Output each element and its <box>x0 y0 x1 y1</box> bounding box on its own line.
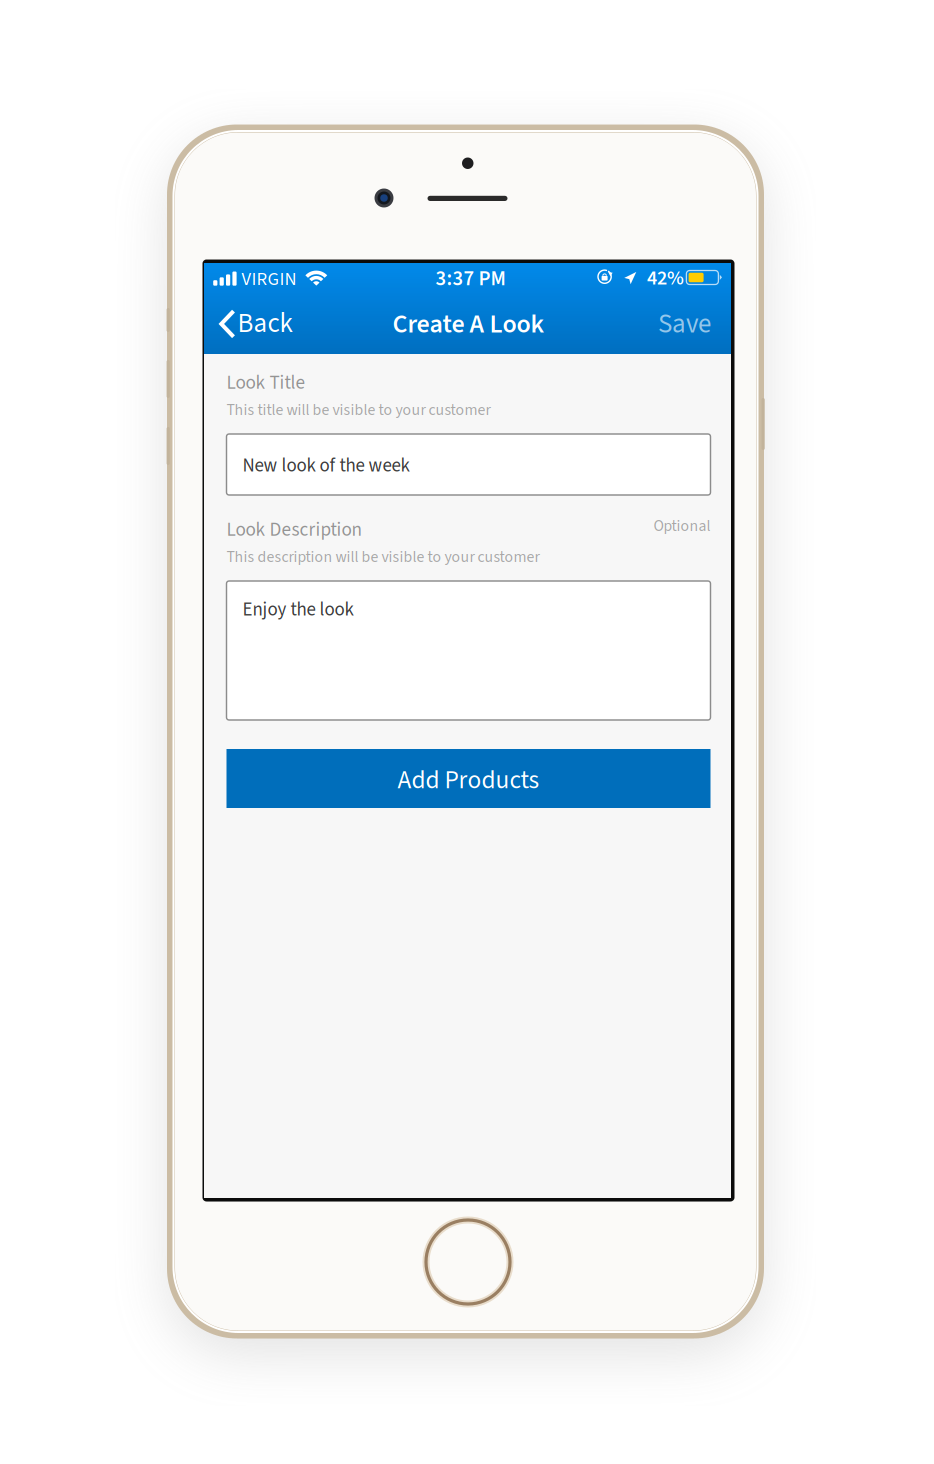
staticText: Create A Look <box>392 306 544 343</box>
staticText: 42% <box>647 264 684 292</box>
button[interactable]: Save <box>634 290 731 358</box>
staticText: 3:37 PM <box>435 264 505 293</box>
staticText: Look Description <box>226 516 362 543</box>
staticText: Add Products <box>397 762 539 798</box>
staticText: Enjoy the look <box>242 596 353 623</box>
button[interactable]: Back <box>204 291 307 356</box>
staticText: Save <box>658 305 711 343</box>
staticText: New look of the week <box>242 452 409 479</box>
staticText: Back <box>238 304 293 343</box>
staticText: This description will be visible to your… <box>226 546 539 568</box>
staticText: Look Title <box>226 369 305 396</box>
button[interactable]: Add Products <box>226 749 710 808</box>
staticText: This title will be visible to your custo… <box>226 399 490 421</box>
staticText: Optional <box>653 515 710 537</box>
staticText: VIRGIN <box>241 266 296 293</box>
